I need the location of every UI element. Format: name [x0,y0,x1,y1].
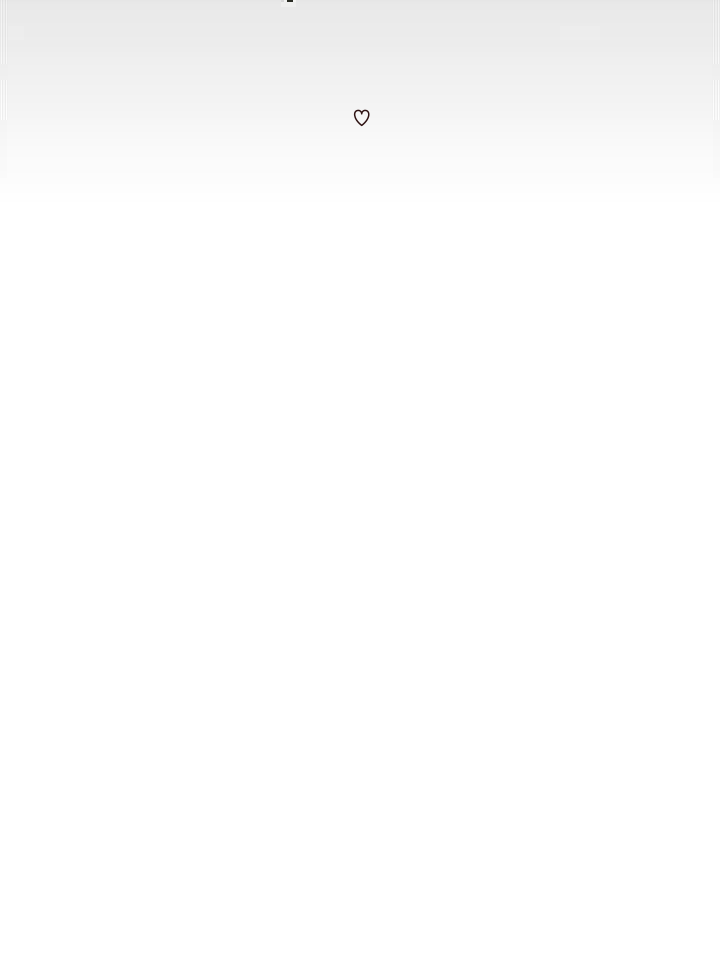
button[interactable]: Favorite [351,107,372,128]
